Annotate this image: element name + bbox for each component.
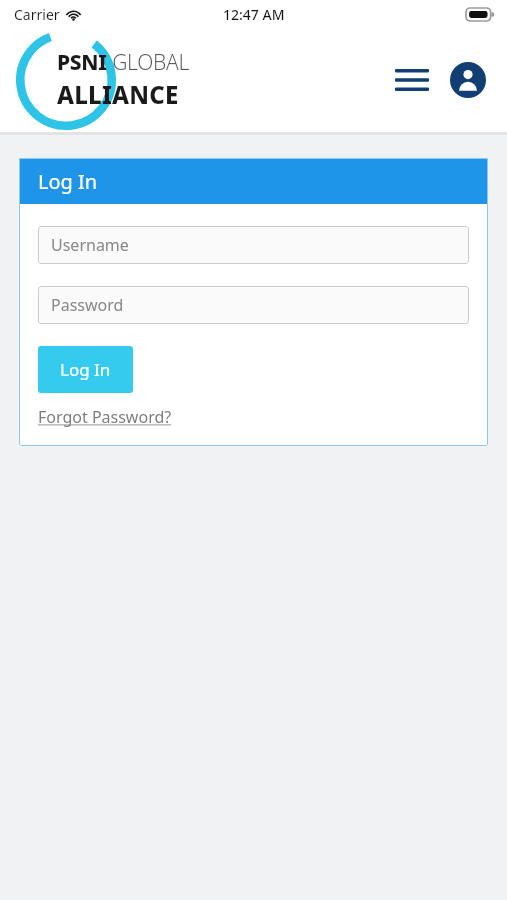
staticText: PSNI bbox=[57, 48, 107, 77]
button[interactable]: Forgot Password? bbox=[38, 406, 172, 428]
staticText: 12:47 AM bbox=[223, 5, 285, 24]
staticText: Log In bbox=[60, 358, 111, 381]
button[interactable]: Password bbox=[38, 286, 469, 324]
staticText: Log In bbox=[38, 168, 98, 195]
button[interactable]: Menu bbox=[390, 58, 434, 102]
staticText: ALLIANCE bbox=[57, 78, 179, 111]
button[interactable]: Log In bbox=[38, 346, 133, 393]
staticText: Username bbox=[51, 234, 129, 256]
button[interactable]: Username bbox=[38, 226, 469, 264]
staticText: Carrier bbox=[14, 5, 60, 24]
staticText: GLOBAL bbox=[107, 48, 189, 77]
button[interactable]: Account bbox=[446, 58, 490, 102]
staticText: Password bbox=[51, 294, 124, 316]
staticText: Forgot Password? bbox=[38, 406, 172, 428]
